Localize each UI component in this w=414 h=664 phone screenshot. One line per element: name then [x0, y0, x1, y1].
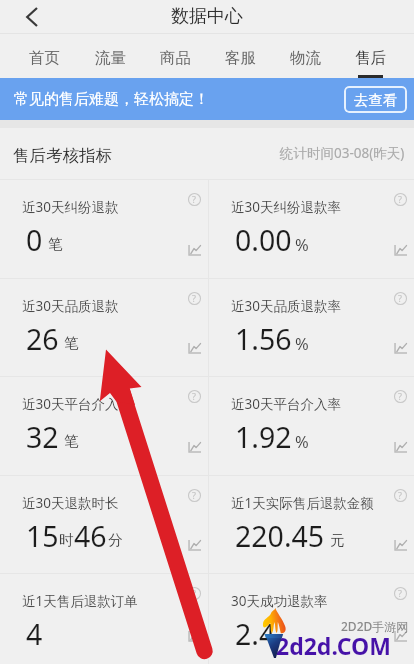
staticText: 4: [26, 615, 43, 654]
staticText: 流量: [95, 48, 126, 68]
button[interactable]: Help: [187, 389, 201, 403]
button[interactable]: 近30天纠纷退款率: [209, 180, 414, 278]
staticText: 15: [26, 517, 59, 556]
button[interactable]: Trend chart: [394, 245, 407, 255]
staticText: 近1天实际售后退款金额: [231, 494, 374, 512]
staticText: ?: [192, 292, 196, 304]
staticText: 分: [108, 531, 123, 549]
button[interactable]: 近1天售后退款订单: [0, 574, 208, 664]
staticText: ?: [192, 193, 196, 205]
button[interactable]: Back: [17, 3, 45, 31]
button[interactable]: 流量: [77, 34, 143, 78]
button[interactable]: Trend chart: [394, 442, 407, 452]
staticText: ?: [192, 587, 196, 599]
staticText: 近30天平台介入率: [231, 395, 341, 413]
staticText: ?: [398, 390, 402, 402]
staticText: ?: [192, 390, 196, 402]
staticText: 近30天纠纷退款: [22, 198, 119, 216]
staticText: %: [295, 332, 309, 354]
staticText: 30天成功退款率: [231, 592, 328, 610]
staticText: 笔: [48, 235, 63, 253]
button[interactable]: Help: [393, 586, 407, 600]
staticText: 统计时间03-08(昨天): [280, 144, 405, 162]
staticText: 首页: [29, 48, 60, 68]
button[interactable]: 售后: [338, 34, 403, 78]
button[interactable]: Trend chart: [188, 631, 201, 641]
button[interactable]: Help: [187, 291, 201, 305]
button[interactable]: 物流: [273, 34, 338, 78]
button[interactable]: Help: [187, 192, 201, 206]
staticText: 0.00: [235, 221, 292, 260]
staticText: 近30天平台介入: [22, 395, 119, 413]
staticText: 1.56: [235, 320, 292, 359]
button[interactable]: Help: [187, 488, 201, 502]
button[interactable]: 近30天纠纷退款: [0, 180, 208, 278]
button[interactable]: Trend chart: [188, 343, 201, 353]
button[interactable]: Help: [393, 291, 407, 305]
button[interactable]: 客服: [208, 34, 273, 78]
staticText: 0: [26, 221, 43, 260]
button[interactable]: 30天成功退款率: [209, 574, 414, 664]
button[interactable]: Trend chart: [394, 631, 407, 641]
button[interactable]: 近30天平台介入率: [209, 377, 414, 475]
button[interactable]: Trend chart: [188, 245, 201, 255]
button[interactable]: 近30天退款时长: [0, 476, 208, 573]
staticText: 近30天品质退款率: [231, 297, 341, 315]
staticText: 笔: [64, 334, 79, 352]
button[interactable]: 近30天品质退款: [0, 279, 208, 376]
staticText: 时: [59, 531, 74, 549]
staticText: ?: [398, 489, 402, 501]
button[interactable]: Help: [187, 586, 201, 600]
staticText: 1.92: [235, 418, 292, 457]
staticText: ?: [398, 193, 402, 205]
staticText: 笔: [64, 432, 79, 450]
staticText: ?: [192, 489, 196, 501]
button[interactable]: 常见的售后难题，轻松搞定！: [0, 78, 414, 120]
staticText: 近1天售后退款订单: [22, 592, 138, 610]
staticText: 近30天品质退款: [22, 297, 119, 315]
staticText: ?: [398, 292, 402, 304]
staticText: 46: [74, 517, 107, 556]
staticText: %: [295, 233, 309, 255]
staticText: 2.4: [235, 615, 276, 654]
button[interactable]: 近1天实际售后退款金额: [209, 476, 414, 573]
staticText: 去查看: [354, 91, 398, 109]
staticText: %: [295, 430, 309, 452]
staticText: 近30天退款时长: [22, 494, 119, 512]
button[interactable]: 首页: [11, 34, 77, 78]
staticText: 客服: [225, 48, 256, 68]
staticText: 常见的售后难题，轻松搞定！: [14, 90, 209, 109]
staticText: 售后: [355, 48, 386, 68]
button[interactable]: Trend chart: [188, 442, 201, 452]
staticText: 26: [26, 320, 59, 359]
button[interactable]: Trend chart: [394, 343, 407, 353]
staticText: 32: [26, 418, 59, 457]
staticText: 数据中心: [171, 5, 243, 28]
staticText: 近30天纠纷退款率: [231, 198, 341, 216]
staticText: ?: [398, 587, 402, 599]
button[interactable]: 去查看: [344, 86, 407, 113]
button[interactable]: 近30天平台介入: [0, 377, 208, 475]
button[interactable]: 商品: [143, 34, 208, 78]
staticText: 2D2D手游网: [341, 618, 409, 634]
staticText: 商品: [160, 48, 191, 68]
staticText: 2d2d.COM: [276, 630, 391, 661]
staticText: 售后考核指标: [13, 145, 112, 166]
button[interactable]: 近30天品质退款率: [209, 279, 414, 376]
button[interactable]: Help: [393, 488, 407, 502]
staticText: 元: [330, 531, 345, 549]
button[interactable]: Trend chart: [188, 540, 201, 550]
staticText: 220.45: [235, 517, 325, 556]
button[interactable]: Help: [393, 192, 407, 206]
button[interactable]: Trend chart: [394, 540, 407, 550]
staticText: 物流: [290, 48, 321, 68]
button[interactable]: Help: [393, 389, 407, 403]
